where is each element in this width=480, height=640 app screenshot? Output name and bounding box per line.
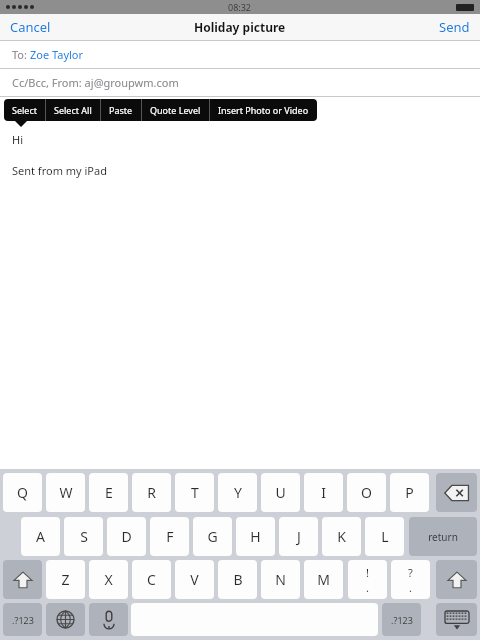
staticText: R [147, 483, 156, 502]
staticText: Paste [109, 104, 133, 116]
button[interactable]: B [218, 560, 257, 599]
staticText: Z [61, 570, 70, 589]
staticText: Q [17, 483, 28, 502]
button[interactable]: Change keyboard [46, 603, 85, 636]
staticText: ? . [408, 565, 413, 595]
staticText: J [297, 527, 301, 546]
staticText: G [207, 527, 218, 546]
staticText: F [166, 527, 174, 546]
staticText: O [361, 483, 372, 502]
button[interactable]: Backspace [436, 473, 477, 512]
staticText: Y [234, 483, 242, 502]
staticText: V [190, 570, 199, 589]
button[interactable]: To: [0, 41, 480, 68]
staticText: L [381, 527, 389, 546]
staticText: Zoe Taylor [30, 47, 84, 62]
button[interactable]: T [175, 473, 214, 512]
staticText: 08:32 [228, 1, 252, 13]
button[interactable]: Hide keyboard [436, 603, 477, 636]
button[interactable]: N [261, 560, 300, 599]
staticText: C [147, 570, 156, 589]
button[interactable]: K [322, 517, 361, 556]
staticText: Quote Level [150, 104, 201, 116]
button[interactable]: X [89, 560, 128, 599]
button[interactable]: Cancel [10, 14, 51, 40]
button[interactable]: Q [3, 473, 42, 512]
staticText: B [233, 570, 243, 589]
staticText: H [250, 527, 261, 546]
staticText: K [337, 527, 346, 546]
button[interactable]: G [193, 517, 232, 556]
staticText: E [105, 483, 113, 502]
staticText: .?123 [391, 614, 413, 626]
staticText: W [59, 483, 73, 502]
staticText: .?123 [12, 614, 34, 626]
button[interactable]: J [279, 517, 318, 556]
staticText: return [428, 530, 458, 544]
button[interactable]: F [150, 517, 189, 556]
button[interactable]: H [236, 517, 275, 556]
button[interactable]: U [261, 473, 300, 512]
staticText: U [275, 483, 286, 502]
staticText: Sent from my iPad [12, 163, 107, 178]
staticText: Send [439, 18, 470, 36]
button[interactable]: Quote Level [142, 99, 209, 121]
button[interactable]: P [390, 473, 429, 512]
button[interactable]: I [304, 473, 343, 512]
button[interactable]: Dictation [89, 603, 128, 636]
button[interactable]: E [89, 473, 128, 512]
button[interactable]: return [409, 517, 477, 556]
button[interactable]: L [365, 517, 404, 556]
button[interactable]: Select [4, 99, 45, 121]
button[interactable]: Cc/Bcc, From: aj@groupwm.com [0, 69, 480, 96]
button[interactable]: O [347, 473, 386, 512]
button[interactable]: ! . [348, 560, 387, 599]
button[interactable]: Select All [46, 99, 100, 121]
staticText: A [36, 527, 45, 546]
button[interactable]: R [132, 473, 171, 512]
button[interactable]: Send [439, 14, 470, 40]
staticText: M [317, 570, 330, 589]
button[interactable]: M [304, 560, 343, 599]
staticText: ! . [366, 565, 369, 595]
button[interactable]: Shift [3, 560, 42, 599]
staticText: Hi [12, 132, 23, 147]
button[interactable]: ? . [391, 560, 430, 599]
button[interactable]: Z [46, 560, 85, 599]
staticText: S [80, 527, 88, 546]
button[interactable]: V [175, 560, 214, 599]
staticText: D [121, 527, 132, 546]
staticText: Holiday picture [194, 19, 286, 35]
staticText: P [405, 483, 414, 502]
button[interactable]: A [21, 517, 60, 556]
button[interactable]: .?123 [382, 603, 421, 636]
button[interactable]: W [46, 473, 85, 512]
button[interactable]: D [107, 517, 146, 556]
staticText: X [104, 570, 113, 589]
staticText: N [275, 570, 286, 589]
staticText: Select All [54, 104, 92, 116]
button[interactable]: Insert Photo or Video [210, 99, 317, 121]
staticText: Select [12, 104, 37, 116]
staticText: Cc/Bcc, From: aj@groupwm.com [12, 75, 179, 90]
button[interactable]: C [132, 560, 171, 599]
button[interactable]: .?123 [3, 603, 42, 636]
button[interactable]: Y [218, 473, 257, 512]
staticText: Insert Photo or Video [218, 104, 309, 116]
button[interactable]: Shift [436, 560, 477, 599]
staticText: I [321, 483, 326, 502]
button[interactable]: S [64, 517, 103, 556]
staticText: To: [12, 47, 30, 62]
button[interactable]: Paste [101, 99, 141, 121]
staticText: T [191, 483, 199, 502]
staticText: Cancel [10, 18, 51, 36]
